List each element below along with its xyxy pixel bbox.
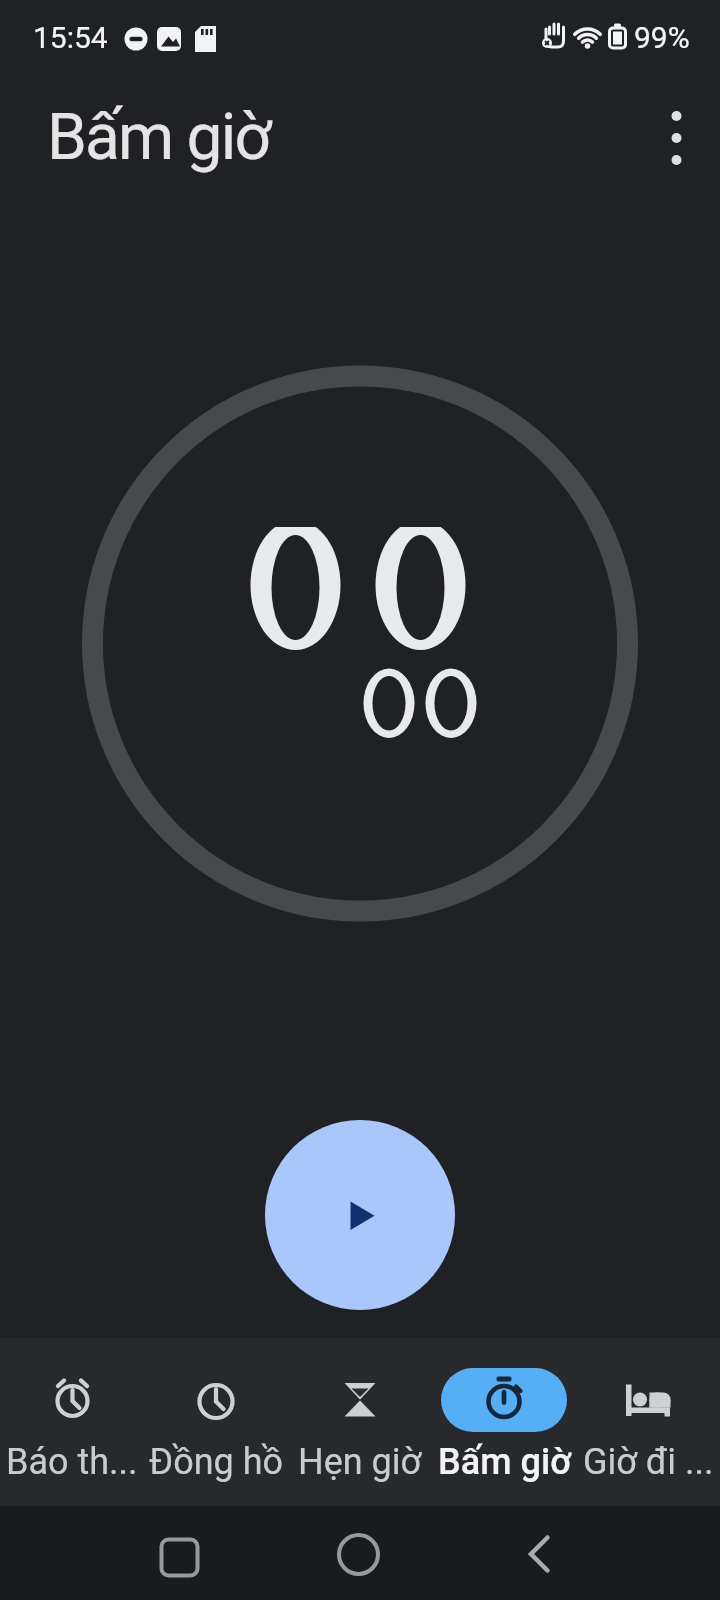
button[interactable]	[288, 1338, 432, 1506]
staticText: Đồng hồ	[149, 1441, 284, 1483]
button[interactable]	[144, 1338, 288, 1506]
staticText: 99%	[634, 20, 690, 55]
staticText: Bấm giờ	[438, 1441, 571, 1483]
staticText: Hẹn giờ	[298, 1441, 422, 1483]
button[interactable]	[265, 1120, 455, 1310]
button[interactable]	[432, 1338, 576, 1506]
button[interactable]	[150, 1528, 210, 1588]
staticText: Bấm giờ	[47, 100, 270, 175]
button[interactable]	[510, 1528, 570, 1588]
button[interactable]	[648, 110, 704, 166]
button[interactable]	[576, 1338, 720, 1506]
button[interactable]	[0, 1338, 144, 1506]
staticText: 15:54	[33, 20, 108, 55]
button[interactable]	[330, 1528, 390, 1588]
staticText: Giờ đi ...	[583, 1441, 714, 1483]
staticText: Báo th...	[6, 1441, 138, 1483]
